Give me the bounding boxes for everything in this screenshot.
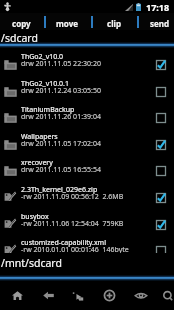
button[interactable]: Not selected [150,157,172,184]
staticText: /mnt/sdcard [1,256,62,270]
staticText: xrecovery [21,158,53,168]
staticText: move [56,18,78,29]
button[interactable]: Selected [150,51,172,78]
staticText: customized-capability.xml [21,238,106,248]
staticText: drw 2011.11.05 22:30:20 [21,59,101,69]
button[interactable]: Selected [150,131,172,158]
staticText: drw 2011.12.24 03:05:50 [21,86,101,96]
button[interactable]: Home [3,281,31,310]
button[interactable]: customized-capability.xml [0,232,174,259]
button[interactable]: Not selected [150,237,172,264]
button[interactable]: Selected [150,211,172,238]
button[interactable]: ThGo2_v10.0.1 [0,73,174,100]
button[interactable]: 2.3Th_kernel_029e6.zip [0,179,174,206]
button[interactable]: /mnt/sdcard [0,253,174,273]
button[interactable]: TitaniumBackup [0,99,174,126]
button[interactable]: /sdcard [0,30,174,44]
button[interactable]: busybox [0,206,174,233]
staticText: copy [12,18,31,29]
button[interactable]: xrecovery [0,152,174,179]
staticText: -rw 2010.01.01 00:01:46 146byte [21,245,129,255]
button[interactable]: send [138,13,174,30]
staticText: ThGo2_v10.0.1 [21,79,69,89]
button[interactable]: View [127,281,155,310]
staticText: drw 2011.11.05 17:02:04 [21,139,101,149]
button[interactable]: copy [0,13,45,30]
button[interactable]: Wallpapers [0,126,174,153]
staticText: 17:18 [146,1,170,13]
staticText: drw 2011.11.26 01:39:04 [21,112,101,122]
button[interactable]: Not selected [150,78,172,105]
staticText: Wallpapers [21,132,58,142]
staticText: send [150,18,170,29]
button[interactable]: Add [95,281,123,310]
staticText: busybox [21,212,49,222]
button[interactable]: Select [63,281,91,310]
button[interactable]: ThGo2_v10.0 [0,46,174,73]
button[interactable]: move [45,13,91,30]
button[interactable]: Back [34,281,62,310]
button[interactable]: Not selected [150,104,172,131]
staticText: TitaniumBackup [21,105,75,115]
staticText: -rw 2011.11.09 00:56:12 2.6MB [21,192,124,202]
button[interactable]: Selected [150,184,172,211]
staticText: clip [107,18,121,29]
staticText: drw 2011.11.05 16:55:54 [21,165,101,175]
staticText: ThGo2_v10.0 [21,52,64,62]
staticText: -rw 2011.11.06 12:54:04 759KB [21,219,124,229]
button[interactable]: clip [92,13,138,30]
staticText: 2.3Th_kernel_029e6.zip [21,185,98,195]
staticText: /sdcard [1,31,38,45]
button[interactable]: Search [154,281,174,310]
